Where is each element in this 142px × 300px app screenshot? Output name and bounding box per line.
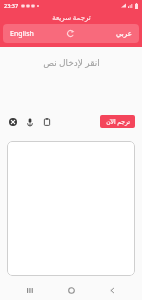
button[interactable]: Voice input: [24, 116, 35, 127]
button[interactable]: Translation output: [7, 141, 135, 276]
button[interactable]: Back: [101, 281, 123, 300]
button[interactable]: Clear text: [7, 116, 18, 127]
button[interactable]: Swap languages: [61, 24, 80, 43]
staticText: English: [10, 29, 34, 39]
staticText: عربي: [116, 30, 132, 38]
button[interactable]: Paste from clipboard: [41, 116, 52, 127]
button[interactable]: English: [3, 24, 61, 43]
staticText: 23:37: [4, 2, 19, 9]
button[interactable]: انقر لإدخال نص: [0, 54, 142, 70]
button[interactable]: ترجم الآن: [100, 115, 135, 128]
button[interactable]: Recent apps: [19, 281, 41, 300]
staticText: ترجم الآن: [106, 118, 130, 126]
staticText: ترجمة سريعة: [52, 13, 91, 23]
button[interactable]: Home: [60, 281, 82, 300]
button[interactable]: عربي: [80, 24, 139, 43]
staticText: انقر لإدخال نص: [43, 56, 100, 68]
